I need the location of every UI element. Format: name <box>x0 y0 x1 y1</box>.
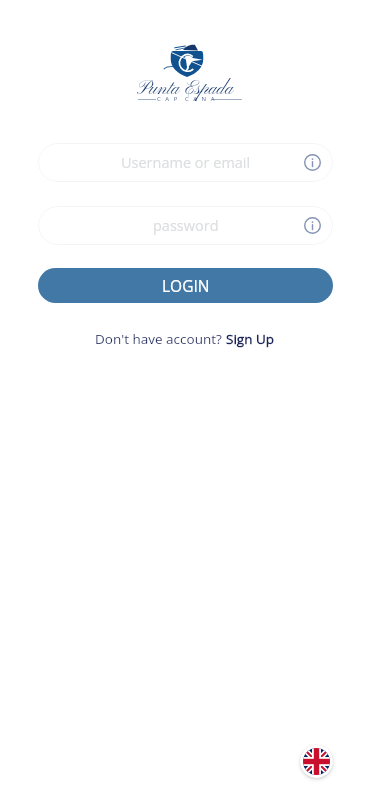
staticText: Sign Up <box>226 330 275 348</box>
button[interactable]: Don't have account? <box>95 330 275 348</box>
staticText: Username or email <box>121 153 251 173</box>
button[interactable]: Change language <box>300 745 333 778</box>
staticText: password <box>153 216 219 236</box>
button[interactable]: password <box>38 206 333 245</box>
staticText: C A P C A N A <box>157 95 216 103</box>
button[interactable]: Info <box>304 154 321 171</box>
staticText: Punta Espada <box>137 78 233 102</box>
button[interactable]: Username or email <box>38 143 333 182</box>
button[interactable]: LOGIN <box>38 268 333 303</box>
staticText: Don't have account? <box>95 330 226 348</box>
staticText: LOGIN <box>162 275 210 296</box>
button[interactable]: Info <box>304 217 321 234</box>
